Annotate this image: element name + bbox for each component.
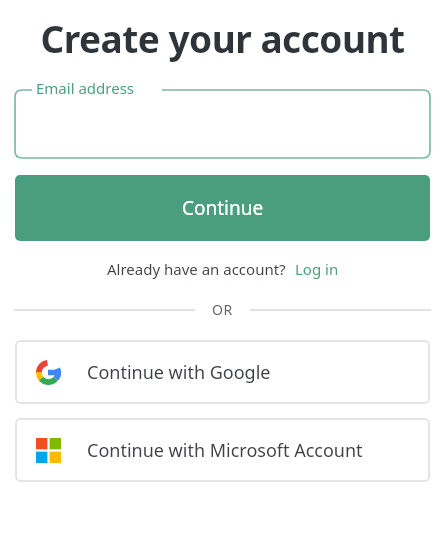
button[interactable]: Log in [295, 259, 339, 279]
button[interactable]: Email address [15, 78, 430, 158]
button[interactable]: Continue [15, 175, 430, 241]
staticText: OR [212, 300, 233, 319]
staticText: Continue with Microsoft Account [87, 438, 363, 463]
button[interactable]: Continue with Google [15, 340, 430, 404]
staticText: Create your account [0, 13, 445, 63]
staticText: Continue with Google [87, 360, 271, 385]
staticText: Continue [182, 195, 264, 221]
staticText: Log in [295, 259, 339, 279]
button[interactable]: Continue with Microsoft Account [15, 418, 430, 482]
staticText: Email address [36, 78, 135, 98]
staticText: Already have an account? [107, 259, 286, 279]
